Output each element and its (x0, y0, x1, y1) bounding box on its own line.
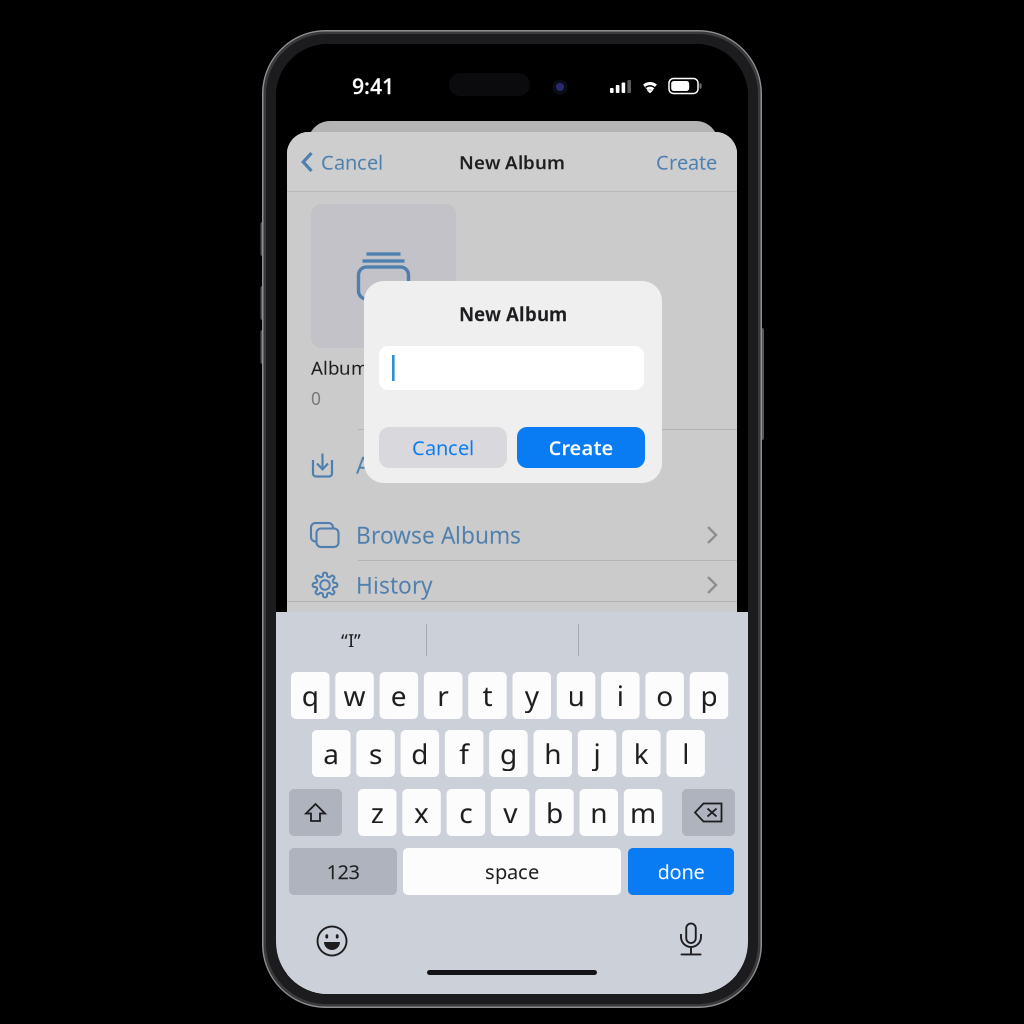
button[interactable]: space (403, 848, 621, 895)
staticText: h (544, 735, 561, 772)
button[interactable]: v (491, 789, 529, 836)
staticText: Cancel (412, 434, 474, 461)
staticText: t (482, 677, 492, 714)
button[interactable]: Cancel (287, 132, 393, 192)
staticText: d (411, 735, 428, 772)
button[interactable]: p (690, 672, 728, 719)
staticText: done (657, 858, 704, 885)
button[interactable]: h (533, 730, 572, 777)
button[interactable]: Shift (289, 789, 342, 836)
button[interactable]: t (468, 672, 507, 719)
staticText: v (503, 794, 517, 831)
staticText: 9:41 (352, 72, 394, 100)
staticText: u (567, 677, 584, 714)
button[interactable]: d (401, 730, 439, 777)
staticText: g (500, 735, 517, 772)
button[interactable]: y (512, 672, 551, 719)
staticText: f (459, 735, 469, 772)
button[interactable]: Cancel (379, 427, 507, 468)
staticText: Cancel (321, 149, 383, 175)
staticText: s (369, 735, 382, 772)
button[interactable]: Add to Album (287, 442, 737, 488)
button[interactable]: j (578, 730, 616, 777)
staticText: c (459, 794, 472, 831)
button[interactable]: q (291, 672, 329, 719)
staticText: “I” (341, 628, 361, 652)
button[interactable]: c (447, 789, 485, 836)
button[interactable]: x (402, 789, 441, 836)
staticText: y (525, 677, 539, 714)
button[interactable]: e (380, 672, 418, 719)
button[interactable]: k (622, 730, 661, 777)
button[interactable]: History (287, 562, 737, 608)
staticText: 0 (311, 387, 321, 410)
button[interactable]: done (628, 848, 734, 895)
button[interactable]: Create (517, 427, 645, 468)
button[interactable]: o (645, 672, 684, 719)
staticText: n (590, 794, 607, 831)
staticText: New Album (459, 302, 567, 326)
staticText: Create (548, 434, 613, 461)
button[interactable]: Delete (682, 789, 735, 836)
button[interactable]: n (579, 789, 618, 836)
staticText: z (371, 794, 384, 831)
button[interactable]: u (557, 672, 595, 719)
button[interactable]: Dictation (673, 922, 709, 958)
staticText: e (391, 677, 407, 714)
button[interactable]: Emoji (314, 923, 350, 959)
staticText: History (356, 570, 433, 600)
staticText: space (485, 858, 539, 885)
staticText: i (617, 677, 624, 714)
staticText: Browse Albums (356, 520, 521, 550)
button[interactable]: r (424, 672, 462, 719)
button[interactable]: s (356, 730, 395, 777)
button[interactable]: Browse Albums (287, 512, 737, 558)
staticText: b (546, 794, 563, 831)
button[interactable]: g (489, 730, 528, 777)
staticText: o (656, 677, 673, 714)
staticText: l (682, 735, 689, 772)
staticText: p (700, 677, 717, 714)
button[interactable]: l (666, 730, 705, 777)
staticText: New Album (459, 150, 565, 174)
button[interactable]: b (535, 789, 574, 836)
staticText: x (414, 794, 429, 831)
staticText: q (302, 677, 319, 714)
button[interactable]: z (358, 789, 396, 836)
staticText: Album Name (311, 355, 425, 380)
staticText: Add to Album (356, 450, 501, 480)
staticText: w (344, 677, 366, 714)
staticText: a (323, 735, 339, 772)
button[interactable]: 123 (289, 848, 397, 895)
staticText: 123 (326, 858, 359, 885)
staticText: m (630, 794, 656, 831)
button[interactable]: w (335, 672, 374, 719)
button[interactable]: f (445, 730, 483, 777)
staticText: Create (656, 149, 717, 175)
button[interactable]: i (601, 672, 640, 719)
staticText: j (593, 735, 600, 772)
staticText: r (437, 677, 449, 714)
button[interactable]: a (312, 730, 350, 777)
staticText: k (634, 735, 649, 772)
button[interactable]: Create (636, 132, 737, 192)
button[interactable]: m (624, 789, 662, 836)
